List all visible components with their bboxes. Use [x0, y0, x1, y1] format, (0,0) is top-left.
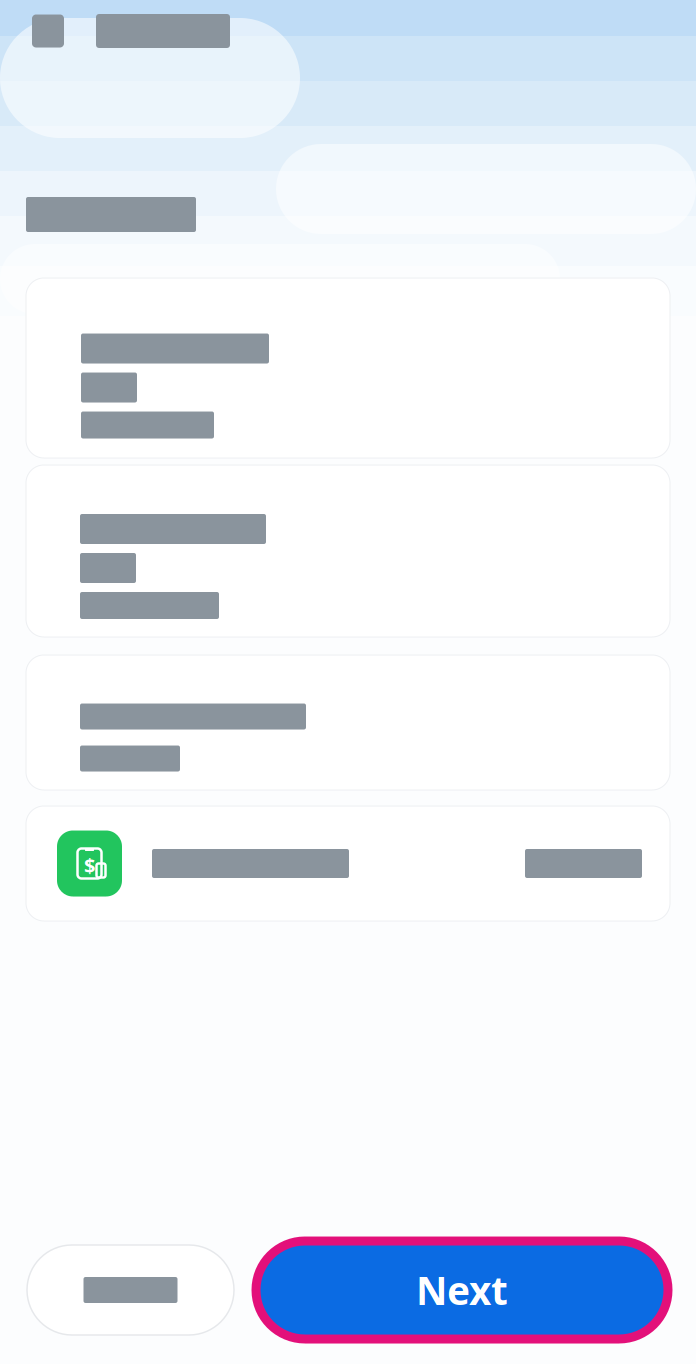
button[interactable]: Back	[27, 1245, 234, 1335]
button[interactable]	[26, 655, 670, 790]
button[interactable]: Back	[32, 14, 64, 47]
staticText: $	[84, 852, 95, 879]
staticText: Next	[416, 1264, 508, 1316]
button[interactable]	[26, 465, 670, 637]
button[interactable]	[26, 278, 670, 458]
button[interactable]: $	[26, 806, 670, 921]
button[interactable]: Next	[256, 1241, 668, 1339]
button[interactable]: Title	[96, 14, 230, 48]
